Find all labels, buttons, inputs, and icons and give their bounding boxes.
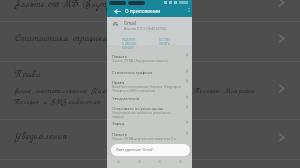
button[interactable]: Открывать по умолчанию — [107, 104, 192, 119]
staticText: Занято 698 МБ (Внутренняя память) — [15, 0, 167, 10]
button[interactable]: Память — [107, 130, 192, 145]
staticText: Права — [112, 80, 125, 85]
button[interactable]: Ещё — [186, 7, 192, 13]
staticText: УДАЛИТЬ ОБНОВЛЕНИЯ — [122, 38, 137, 50]
staticText: Версия 7.7.1 (164524700) — [124, 27, 167, 31]
staticText: Уведомления — [15, 131, 68, 143]
staticText: Статистика трафика — [15, 33, 108, 45]
staticText: Идет удаление "Gmail"... — [116, 148, 157, 152]
button[interactable]: Память — [107, 52, 192, 67]
button[interactable]: Назад — [114, 8, 121, 15]
staticText: Gmail — [124, 21, 136, 26]
button[interactable]: Клавиша навигации — [137, 159, 142, 164]
button[interactable]: Заряд — [107, 119, 192, 129]
button[interactable]: Уведомления — [107, 94, 192, 104]
button[interactable]: Клавиша навигации — [116, 159, 121, 164]
button[interactable]: Статистика трафика — [107, 68, 192, 78]
staticText: Память — [112, 54, 127, 59]
staticText: Память — [112, 132, 127, 137]
staticText: Занято 39 МБ внутренней памяти за 3 ч — [112, 137, 184, 141]
button[interactable]: Клавиша навигации — [178, 159, 183, 164]
staticText: Некоторые настройки по умолчанию заданы — [112, 111, 184, 119]
staticText: Уведомления — [112, 96, 139, 101]
button[interactable]: Права — [107, 78, 192, 93]
staticText: Ваше местоположение, Камера, Микрофон, Т… — [112, 85, 184, 93]
staticText: Заряд — [112, 121, 124, 126]
staticText: Ваше местоположение, Камера, Контакты, П… — [14, 86, 256, 96]
staticText: Занято 39 МБ (Внутренняя память) — [112, 59, 184, 63]
button[interactable]: Клавиша навигации — [157, 159, 162, 164]
staticText: Открывать по умолчанию — [112, 106, 164, 111]
staticText: ОСТАНОВИТЬ — [159, 38, 172, 46]
staticText: Телефон и SMS-сообщения — [14, 97, 101, 107]
staticText: О приложении — [125, 8, 161, 14]
staticText: Права — [15, 69, 41, 81]
staticText: Статистика трафика — [112, 70, 153, 75]
